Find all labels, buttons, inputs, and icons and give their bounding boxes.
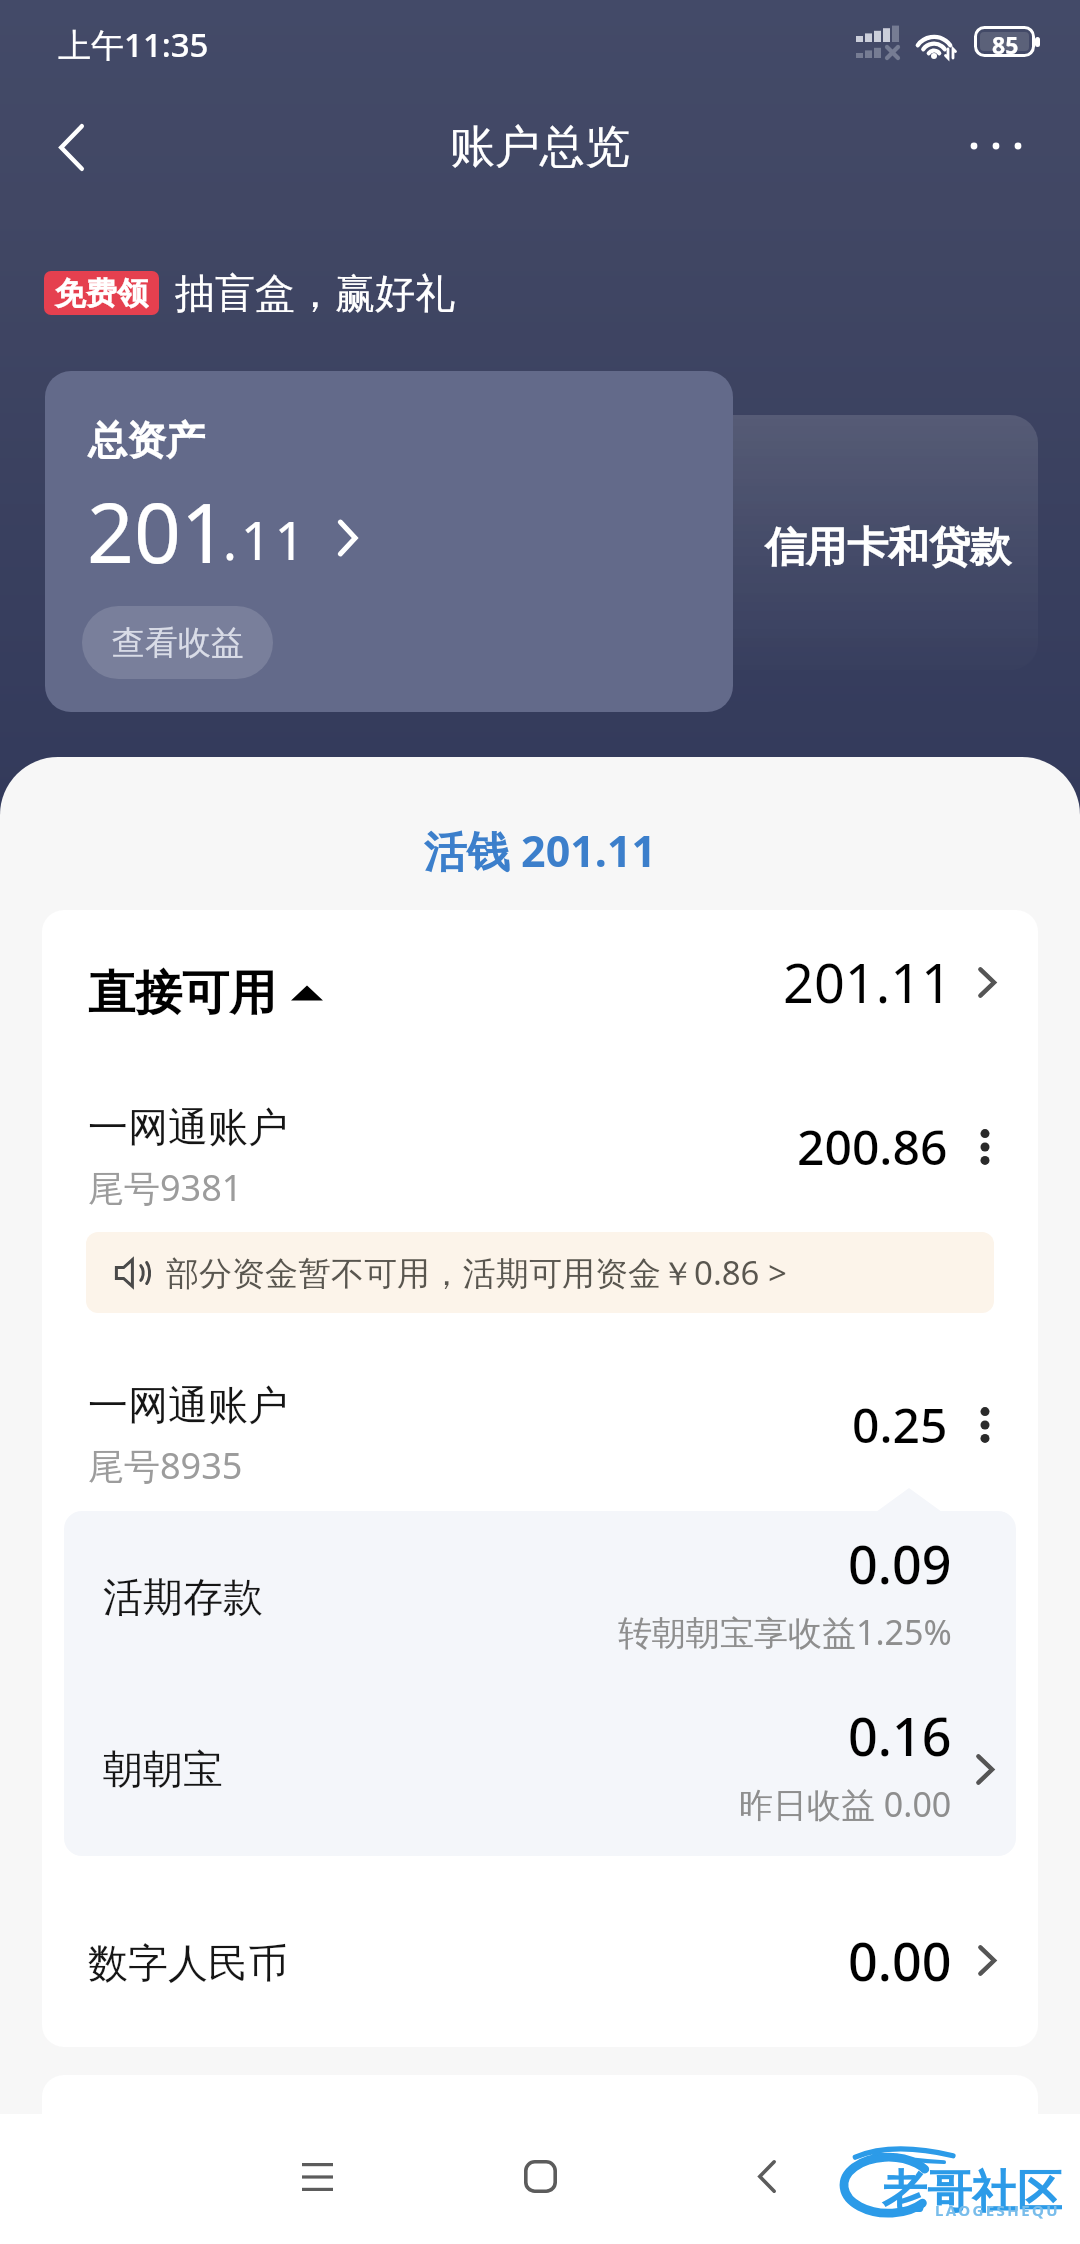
staticText: 201 [87, 475, 228, 587]
staticText: 活钱 201.11 [0, 821, 1080, 880]
staticText: 201.11 [783, 945, 952, 1019]
staticText: 直接可用 [88, 964, 276, 1023]
button[interactable]: 一网通账户 [42, 1356, 1038, 1510]
staticText: .11 [223, 504, 309, 575]
staticText: 0.16 [848, 1700, 952, 1771]
staticText: 信用卡和贷款 [765, 522, 1011, 574]
button[interactable]: More [974, 1400, 996, 1450]
button[interactable]: 数字人民币 [42, 1868, 1038, 2047]
staticText: 活期存款 [103, 1572, 263, 1622]
staticText: 尾号9381 [88, 1163, 243, 1212]
staticText: 200.86 [797, 1114, 948, 1179]
staticText: 昨日收益 0.00 [739, 1781, 952, 1827]
button[interactable]: 直接可用 [42, 910, 1038, 1070]
staticText: 抽盲盒，赢好礼 [175, 268, 455, 318]
button[interactable]: 一网通账户 [42, 1078, 1038, 1232]
button[interactable]: More options [958, 104, 1042, 188]
button[interactable]: 信用卡和贷款 [640, 415, 1038, 670]
button[interactable]: Back [717, 2126, 817, 2226]
staticText: 一网通账户 [88, 1380, 288, 1430]
staticText: 查看收益 [112, 622, 244, 664]
staticText: 转朝朝宝享收益1.25% [618, 1609, 952, 1655]
staticText: 0.09 [848, 1528, 952, 1599]
button[interactable]: Home [490, 2126, 590, 2226]
staticText: 一网通账户 [88, 1102, 288, 1152]
staticText: 朝朝宝 [103, 1744, 223, 1794]
staticText: 老哥社区 [882, 2164, 1062, 2221]
staticText: 0.25 [852, 1392, 948, 1457]
staticText: 总资产 [88, 416, 205, 465]
staticText: 尾号8935 [88, 1441, 243, 1490]
button[interactable]: More [974, 1122, 996, 1172]
button[interactable]: 总资产 [45, 371, 733, 712]
staticText: 部分资金暂不可用，活期可用资金￥0.86 > [166, 1250, 787, 1295]
staticText: 账户总览 [450, 119, 630, 176]
button[interactable]: 免费领 [44, 271, 159, 315]
button[interactable]: Recents [267, 2127, 367, 2227]
staticText: 上午11:35 [58, 22, 209, 67]
button[interactable]: Back [29, 105, 113, 189]
staticText: LAOGESHEQU [935, 2200, 1060, 2220]
staticText: 数字人民币 [88, 1938, 288, 1988]
button[interactable]: 活期存款 [64, 1511, 1016, 1683]
staticText: 85 [992, 29, 1019, 60]
button[interactable]: 查看收益 [82, 606, 273, 679]
staticText: 免费领 [55, 274, 148, 313]
button[interactable]: 部分资金暂不可用，活期可用资金￥0.86 > [86, 1232, 994, 1313]
button[interactable]: 朝朝宝 [64, 1683, 1016, 1855]
staticText: 0.00 [848, 1925, 952, 1996]
